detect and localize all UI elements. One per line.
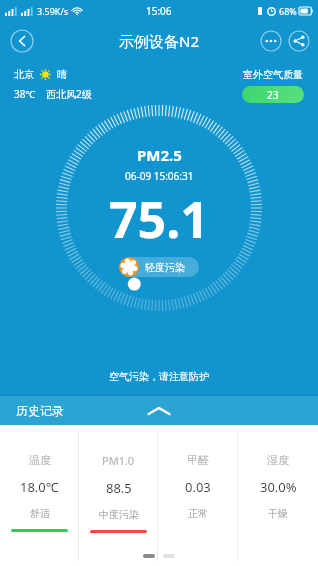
staticText: 晴	[57, 68, 67, 81]
staticText: 北京	[14, 68, 34, 81]
staticText: 88.5	[106, 479, 132, 497]
staticText: 舒适	[30, 507, 50, 520]
staticText: 15:06	[146, 4, 172, 18]
staticText: 30.0%	[260, 478, 297, 496]
other: Expand history	[146, 404, 172, 418]
staticText: 历史记录	[16, 403, 64, 418]
staticText: 75.1	[109, 185, 209, 253]
staticText: 正常	[188, 507, 208, 520]
staticText: 室外空气质量	[243, 68, 303, 81]
staticText: 空气污染，请注意防护	[0, 370, 318, 383]
button[interactable]: 湿度	[238, 425, 318, 566]
button[interactable]: 温度	[0, 425, 79, 566]
staticText: 示例设备N2	[119, 31, 199, 51]
staticText: 18.0℃	[20, 478, 59, 496]
staticText: 06-09 15:06:31	[125, 169, 194, 183]
staticText: PM1.0	[102, 453, 135, 468]
staticText: 3.59K/s	[37, 5, 69, 17]
button[interactable]: 甲醛	[158, 425, 238, 566]
button[interactable]: Share	[288, 30, 310, 52]
button[interactable]: PM1.0	[79, 425, 158, 566]
staticText: 轻度污染	[145, 261, 185, 274]
button[interactable]: Back	[10, 29, 34, 53]
button[interactable]: 23	[242, 86, 304, 103]
button[interactable]: More options	[260, 30, 282, 52]
staticText: 0.03	[185, 478, 211, 496]
staticText: 中度污染	[99, 508, 139, 521]
staticText: 西北风2级	[46, 87, 92, 101]
staticText: 温度	[29, 453, 51, 467]
staticText: 干燥	[268, 507, 288, 520]
staticText: 湿度	[267, 453, 289, 467]
button[interactable]: 轻度污染	[119, 257, 199, 277]
staticText: 68%	[279, 5, 297, 17]
staticText: 甲醛	[187, 453, 209, 467]
staticText: PM2.5	[137, 145, 182, 165]
staticText: 23	[267, 88, 279, 102]
button[interactable]: 历史记录	[0, 396, 318, 425]
staticText: 38℃	[14, 87, 36, 101]
